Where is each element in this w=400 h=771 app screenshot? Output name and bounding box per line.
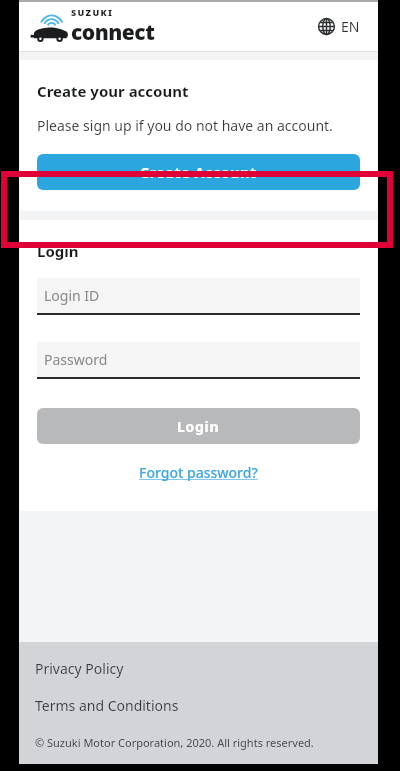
staticText: Login ID xyxy=(44,286,100,305)
staticText: Please sign up if you do not have an acc… xyxy=(37,116,333,135)
staticText: connect xyxy=(71,18,155,47)
button[interactable]: Create Account xyxy=(37,154,360,190)
staticText: © Suzuki Motor Corporation, 2020. All ri… xyxy=(35,735,314,750)
staticText: Terms and Conditions xyxy=(35,696,179,715)
staticText: Forgot password? xyxy=(139,463,258,482)
button[interactable]: Password xyxy=(37,342,360,379)
staticText: EN xyxy=(341,17,360,36)
staticText: Privacy Policy xyxy=(35,659,124,678)
other: Change language xyxy=(318,18,335,35)
staticText: Create your account xyxy=(37,81,189,101)
button[interactable]: Login xyxy=(37,408,360,444)
staticText: SUZUKI xyxy=(71,6,114,18)
button[interactable]: Change language xyxy=(314,12,364,41)
button[interactable]: Forgot password? xyxy=(134,458,263,487)
staticText: Create Account xyxy=(140,163,257,182)
staticText: Login xyxy=(37,241,79,261)
staticText: Login xyxy=(177,417,220,436)
button[interactable]: Login ID xyxy=(37,278,360,315)
button[interactable]: Terms and Conditions xyxy=(35,696,179,715)
staticText: Password xyxy=(44,350,108,369)
button[interactable]: Privacy Policy xyxy=(35,659,124,678)
